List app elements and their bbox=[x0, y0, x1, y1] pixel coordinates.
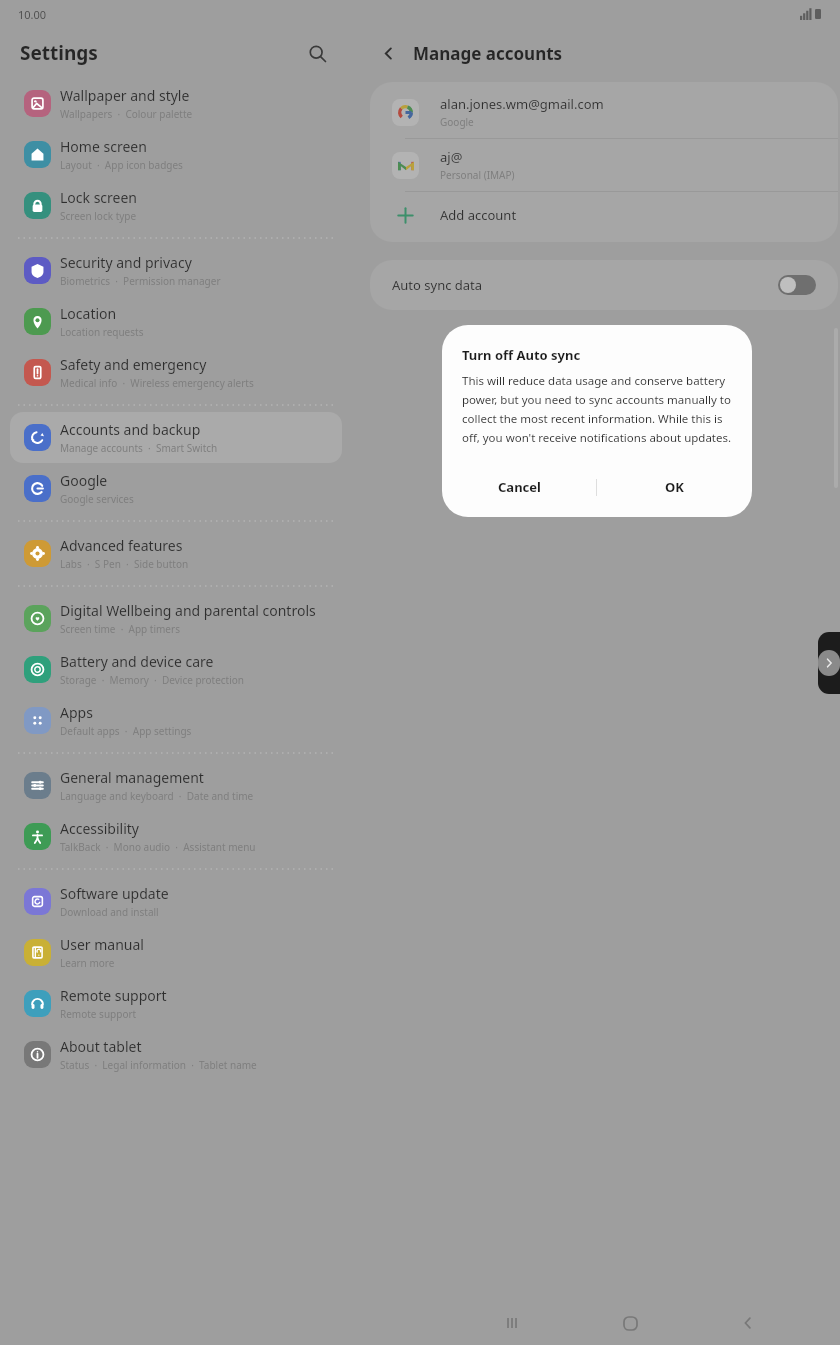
staticText: About tablet bbox=[60, 1037, 142, 1056]
staticText: Accounts and backup bbox=[60, 420, 201, 439]
staticText: Screen time · App timers bbox=[60, 622, 180, 636]
staticText: Safety and emergency bbox=[60, 355, 207, 374]
button[interactable]: alan.jones.wm@gmail.com bbox=[370, 86, 838, 139]
staticText: Status · Legal information · Tablet name bbox=[60, 1058, 257, 1072]
staticText: Biometrics · Permission manager bbox=[60, 274, 221, 288]
staticText: Layout · App icon badges bbox=[60, 158, 183, 172]
staticText: Battery and device care bbox=[60, 652, 214, 671]
staticText: Advanced features bbox=[60, 536, 183, 555]
button[interactable]: Search bbox=[300, 36, 334, 70]
button[interactable]: Home screen bbox=[10, 129, 342, 180]
staticText: Home screen bbox=[60, 137, 147, 156]
staticText: Location bbox=[60, 304, 117, 323]
staticText: Language and keyboard · Date and time bbox=[60, 789, 254, 803]
staticText: Digital Wellbeing and parental controls bbox=[60, 601, 316, 620]
staticText: Location requests bbox=[60, 325, 144, 339]
button[interactable]: Software update bbox=[10, 876, 342, 927]
button[interactable]: Accounts and backup bbox=[10, 412, 342, 463]
staticText: Add account bbox=[440, 206, 517, 224]
button[interactable]: Recents bbox=[486, 1301, 538, 1345]
staticText: Personal (IMAP) bbox=[440, 168, 515, 182]
button[interactable]: Advanced features bbox=[10, 528, 342, 579]
button[interactable]: Digital Wellbeing and parental controls bbox=[10, 593, 342, 644]
button[interactable]: Battery and device care bbox=[10, 644, 342, 695]
staticText: User manual bbox=[60, 935, 144, 954]
staticText: Google bbox=[440, 115, 474, 129]
staticText: 10.00 bbox=[18, 7, 47, 22]
staticText: Remote support bbox=[60, 1007, 137, 1021]
staticText: Download and install bbox=[60, 905, 159, 919]
button[interactable]: User manual bbox=[10, 927, 342, 978]
button[interactable]: Home bbox=[604, 1301, 656, 1345]
staticText: Lock screen bbox=[60, 188, 138, 207]
staticText: Settings bbox=[20, 40, 98, 66]
button[interactable]: Google bbox=[10, 463, 342, 514]
staticText: Accessibility bbox=[60, 819, 139, 838]
staticText: Default apps · App settings bbox=[60, 724, 192, 738]
button[interactable]: Apps bbox=[10, 695, 342, 746]
staticText: Wallpapers · Colour palette bbox=[60, 107, 193, 121]
staticText: Manage accounts bbox=[413, 42, 563, 65]
staticText: Software update bbox=[60, 884, 169, 903]
staticText: Auto sync data bbox=[392, 276, 483, 294]
staticText: OK bbox=[665, 478, 684, 496]
staticText: Wallpaper and style bbox=[60, 86, 190, 105]
button[interactable]: Auto sync data bbox=[370, 260, 838, 310]
button[interactable]: Security and privacy bbox=[10, 245, 342, 296]
button[interactable]: Back bbox=[722, 1301, 774, 1345]
button[interactable]: Wallpaper and style bbox=[10, 78, 342, 129]
staticText: Turn off Auto sync bbox=[462, 346, 581, 364]
staticText: General management bbox=[60, 768, 204, 787]
button[interactable]: Open side panel bbox=[818, 632, 840, 694]
staticText: Google services bbox=[60, 492, 134, 506]
button[interactable]: Accessibility bbox=[10, 811, 342, 862]
button[interactable]: Location bbox=[10, 296, 342, 347]
staticText: Manage accounts · Smart Switch bbox=[60, 441, 218, 455]
button[interactable]: General management bbox=[10, 760, 342, 811]
staticText: Medical info · Wireless emergency alerts bbox=[60, 376, 254, 390]
button[interactable]: Cancel bbox=[442, 463, 596, 511]
staticText: Google bbox=[60, 471, 108, 490]
button[interactable]: Back bbox=[372, 37, 404, 69]
staticText: This will reduce data usage and conserve… bbox=[462, 373, 732, 445]
staticText: Security and privacy bbox=[60, 253, 192, 272]
button[interactable]: aj@ bbox=[370, 139, 838, 192]
button[interactable]: Lock screen bbox=[10, 180, 342, 231]
staticText: alan.jones.wm@gmail.com bbox=[440, 95, 604, 113]
staticText: Screen lock type bbox=[60, 209, 137, 223]
staticText: Remote support bbox=[60, 986, 167, 1005]
staticText: TalkBack · Mono audio · Assistant menu bbox=[60, 840, 256, 854]
button[interactable]: Remote support bbox=[10, 978, 342, 1029]
button[interactable]: OK bbox=[597, 463, 752, 511]
staticText: Storage · Memory · Device protection bbox=[60, 673, 245, 687]
staticText: Apps bbox=[60, 703, 93, 722]
staticText: Cancel bbox=[498, 478, 541, 496]
staticText: Labs · S Pen · Side button bbox=[60, 557, 189, 571]
button[interactable]: Safety and emergency bbox=[10, 347, 342, 398]
button[interactable]: About tablet bbox=[10, 1029, 342, 1080]
button[interactable]: Add account bbox=[370, 192, 838, 238]
staticText: aj@ bbox=[440, 148, 463, 166]
staticText: Learn more bbox=[60, 956, 115, 970]
